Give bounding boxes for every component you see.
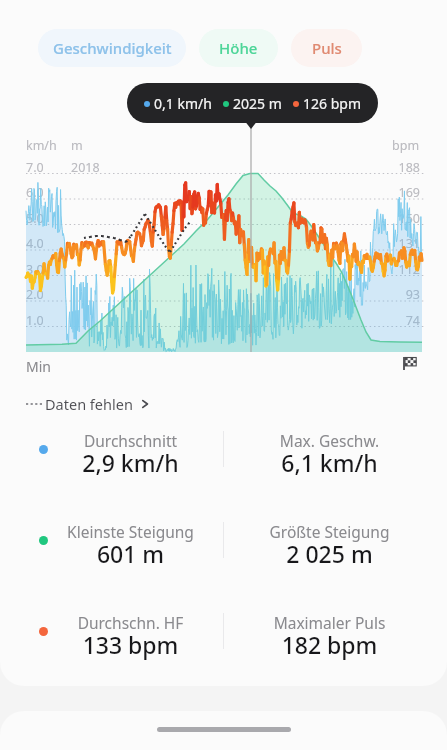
staticText: 93 — [390, 286, 420, 303]
staticText: m — [71, 137, 83, 154]
button[interactable]: Größte Steigung — [224, 516, 435, 566]
staticText: Höhe — [219, 38, 258, 58]
button[interactable]: Durchschnitt — [38, 425, 223, 475]
staticText: Durchschnitt — [38, 430, 223, 451]
staticText: 150 — [390, 210, 420, 227]
staticText: Geschwindigkeit — [53, 38, 172, 58]
button[interactable]: Maximaler Puls — [224, 607, 435, 657]
staticText: Kleinste Steigung — [38, 521, 223, 542]
staticText: bpm — [392, 137, 420, 154]
button[interactable]: Geschwindigkeit — [38, 29, 186, 67]
staticText: 2 025 m — [224, 538, 435, 569]
button[interactable]: Höhe — [199, 29, 278, 67]
staticText: 112 — [390, 261, 420, 278]
button[interactable]: Max. Geschw. — [224, 425, 435, 475]
staticText: Maximaler Puls — [224, 612, 435, 633]
button[interactable]: Kleinste Steigung — [38, 516, 223, 566]
staticText: 5.0 — [26, 210, 44, 227]
staticText: Min — [26, 357, 51, 376]
staticText: Puls — [312, 38, 342, 58]
button[interactable]: Daten fehlen — [26, 394, 151, 414]
staticText: 2,9 km/h — [38, 447, 223, 478]
staticText: 131 — [390, 235, 420, 252]
button[interactable]: Durchschn. HF — [38, 607, 223, 657]
staticText: 6,1 km/h — [224, 447, 435, 478]
staticText: 133 bpm — [38, 629, 223, 660]
button[interactable]: 0,1 km/h — [127, 83, 378, 123]
staticText: km/h — [26, 137, 57, 154]
staticText: 188 — [390, 159, 420, 176]
staticText: 182 bpm — [224, 629, 435, 660]
staticText: 2025 m — [233, 94, 282, 113]
staticText: Größte Steigung — [224, 521, 435, 542]
staticText: Daten fehlen — [45, 394, 133, 414]
staticText: 2.0 — [26, 286, 44, 303]
staticText: 2018 — [71, 159, 100, 176]
staticText: 169 — [390, 184, 420, 201]
staticText: Max. Geschw. — [224, 430, 435, 451]
staticText: 0,1 km/h — [154, 94, 212, 113]
staticText: 7.0 — [26, 159, 44, 176]
staticText: 74 — [390, 312, 420, 329]
staticText: 601 m — [38, 538, 223, 569]
staticText: 6.0 — [26, 184, 44, 201]
staticText: Durchschn. HF — [38, 612, 223, 633]
staticText: 126 bpm — [303, 94, 361, 113]
staticText: 4.0 — [26, 235, 44, 252]
staticText: 3.0 — [26, 261, 44, 278]
staticText: 1.0 — [26, 312, 44, 329]
button[interactable]: Puls — [291, 29, 362, 67]
